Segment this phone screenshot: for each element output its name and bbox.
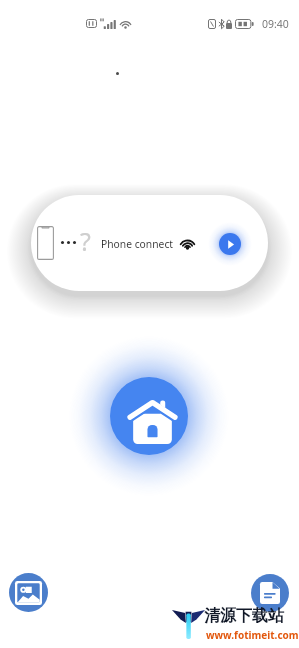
button[interactable]: Gallery: [9, 573, 48, 612]
staticText: 09:40: [262, 17, 289, 31]
button[interactable]: Play: [219, 233, 241, 255]
button[interactable]: ?: [31, 195, 268, 291]
staticText: Phone connect: [101, 237, 174, 251]
button[interactable]: Home: [110, 377, 188, 455]
staticText: www.fotimeit.com: [206, 628, 299, 642]
staticText: 清源下载站: [204, 606, 284, 626]
button[interactable]: Document: [251, 574, 289, 612]
staticText: ?: [80, 224, 91, 258]
